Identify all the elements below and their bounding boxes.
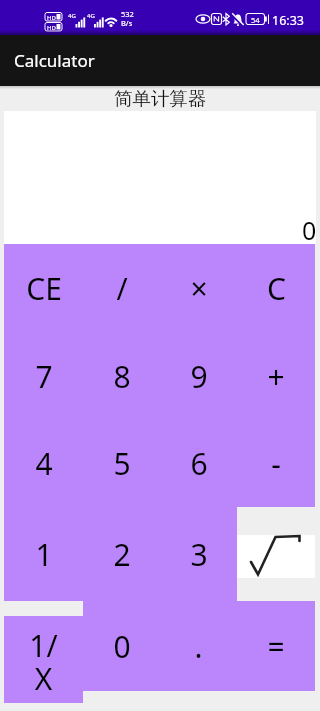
button[interactable]: 2: [83, 507, 160, 601]
staticText: 54: [251, 15, 260, 25]
staticText: 9: [190, 356, 208, 397]
button[interactable]: +: [237, 332, 315, 420]
staticText: HD: [47, 14, 56, 22]
staticText: B/s: [121, 18, 133, 28]
staticText: 5: [113, 443, 131, 484]
staticText: 简单计算器: [114, 87, 207, 110]
button[interactable]: 5: [83, 420, 160, 507]
button[interactable]: 6: [160, 420, 237, 507]
staticText: 4G: [68, 12, 76, 20]
button[interactable]: 3: [160, 507, 237, 601]
button[interactable]: =: [237, 601, 315, 691]
staticText: .: [194, 626, 203, 667]
staticText: 16:33: [272, 12, 304, 29]
button[interactable]: /: [83, 244, 160, 332]
staticText: ×: [190, 268, 208, 309]
button[interactable]: Calculator: [0, 35, 320, 86]
staticText: /: [116, 268, 128, 309]
button[interactable]: 0: [83, 601, 160, 691]
button[interactable]: .: [160, 601, 237, 691]
button[interactable]: 0: [4, 111, 316, 244]
staticText: +: [267, 356, 285, 397]
staticText: 532: [121, 9, 134, 19]
button[interactable]: 4: [4, 420, 83, 507]
staticText: 1: [35, 534, 53, 575]
staticText: CE: [26, 268, 62, 309]
staticText: 4G: [87, 12, 95, 20]
staticText: C: [267, 268, 286, 309]
button[interactable]: -: [237, 420, 315, 507]
button[interactable]: 1/ X: [4, 616, 83, 703]
staticText: 0: [302, 213, 317, 247]
staticText: 7: [35, 356, 53, 397]
button[interactable]: [237, 535, 315, 578]
button[interactable]: ×: [160, 244, 237, 332]
staticText: 2: [113, 534, 131, 575]
staticText: 6: [190, 443, 208, 484]
staticText: HD: [47, 24, 56, 32]
staticText: =: [267, 626, 285, 667]
button[interactable]: 1: [4, 507, 83, 601]
staticText: -: [271, 443, 281, 484]
staticText: 3: [190, 534, 208, 575]
staticText: 0: [113, 626, 131, 667]
button[interactable]: 8: [83, 332, 160, 420]
button[interactable]: 7: [4, 332, 83, 420]
button[interactable]: C: [237, 244, 315, 332]
staticText: Calculator: [14, 49, 95, 72]
staticText: 1/ X: [29, 625, 58, 699]
button[interactable]: CE: [4, 244, 83, 332]
staticText: 8: [113, 356, 131, 397]
button[interactable]: 9: [160, 332, 237, 420]
staticText: 4: [35, 443, 53, 484]
